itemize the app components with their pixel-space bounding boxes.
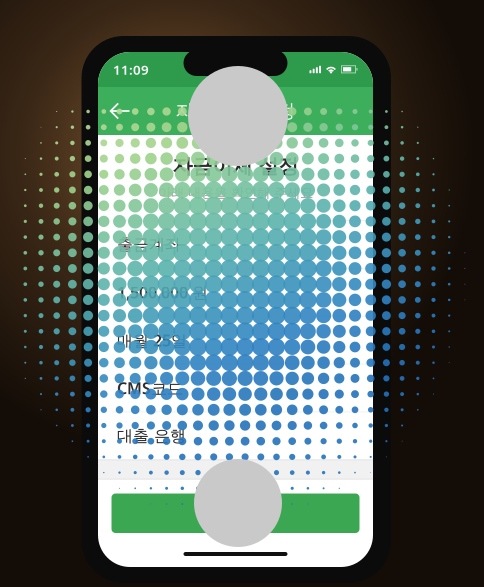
- staticText: 출금계좌: [117, 235, 181, 254]
- button[interactable]: 출금계좌: [98, 221, 373, 268]
- button[interactable]: 신청하기: [111, 493, 359, 533]
- button[interactable]: 매월 25일: [98, 317, 373, 364]
- button[interactable]: CMS코드: [98, 365, 373, 412]
- staticText: 자금이체 설정: [172, 154, 298, 179]
- staticText: 대출 은행: [117, 426, 186, 446]
- staticText: 자금이체 설정: [175, 99, 295, 122]
- staticText: 11:09: [113, 61, 149, 78]
- staticText: CMS코드: [117, 377, 183, 399]
- button[interactable]: 1,500,000 원: [98, 269, 373, 316]
- staticText: 아래 내용을 확인해 주세요: [158, 185, 313, 201]
- button[interactable]: Back: [98, 89, 142, 133]
- staticText: 1,500,000 원: [117, 282, 208, 303]
- button[interactable]: 대출 은행: [98, 412, 373, 459]
- staticText: 매월 25일: [117, 330, 187, 351]
